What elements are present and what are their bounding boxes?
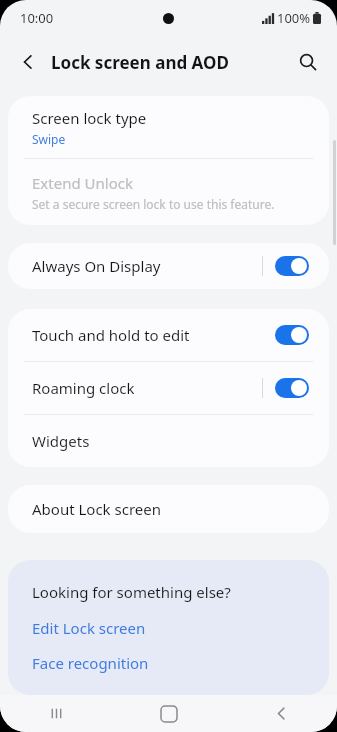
button[interactable]: Recents: [0, 695, 113, 732]
staticText: 100%: [277, 9, 311, 27]
staticText: Widgets: [32, 431, 90, 451]
staticText: Swipe: [32, 131, 66, 147]
staticText: 10:00: [20, 9, 54, 27]
staticText: Set a secure screen lock to use this fea…: [32, 196, 275, 212]
staticText: About Lock screen: [32, 499, 161, 519]
staticText: Roaming clock: [32, 378, 135, 398]
button[interactable]: Widgets: [8, 415, 329, 467]
staticText: Extend Unlock: [32, 173, 133, 193]
button[interactable]: Back: [225, 695, 337, 732]
button[interactable]: Touch and hold to edit: [8, 309, 329, 361]
button[interactable]: Roaming clock: [8, 362, 329, 414]
button[interactable]: Toggle: [275, 325, 309, 345]
button[interactable]: Extend Unlock: [8, 159, 329, 225]
button[interactable]: Toggle: [275, 256, 309, 276]
button[interactable]: Edit Lock screen: [32, 618, 146, 638]
button[interactable]: Back: [12, 45, 46, 79]
staticText: Screen lock type: [32, 108, 147, 128]
staticText: Lock screen and AOD: [51, 51, 229, 74]
button[interactable]: Always On Display: [8, 243, 329, 289]
staticText: Face recognition: [32, 653, 149, 673]
button[interactable]: Search: [291, 45, 325, 79]
button[interactable]: Screen lock type: [8, 96, 329, 158]
button[interactable]: Face recognition: [32, 653, 149, 673]
staticText: Touch and hold to edit: [32, 325, 190, 345]
staticText: Looking for something else?: [32, 582, 231, 602]
staticText: Always On Display: [32, 256, 161, 276]
button[interactable]: Home: [113, 695, 225, 732]
button[interactable]: About Lock screen: [8, 485, 329, 533]
staticText: Edit Lock screen: [32, 618, 146, 638]
button[interactable]: Toggle: [275, 378, 309, 398]
